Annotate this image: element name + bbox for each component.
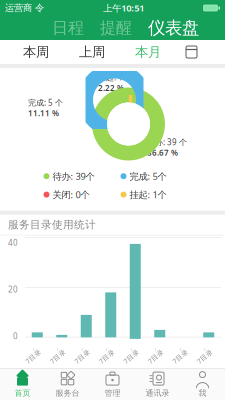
staticText: 管理: [104, 388, 120, 398]
button[interactable]: 仪表盘: [140, 14, 207, 42]
staticText: 首页: [14, 388, 30, 398]
staticText: 7目录: [73, 352, 91, 361]
staticText: 挂起: 1 个: [98, 72, 133, 83]
staticText: 2.22 %: [98, 83, 124, 93]
staticText: 挂起: 1个: [129, 188, 166, 201]
staticText: 提醒: [100, 18, 132, 38]
staticText: 仪表盘: [148, 17, 199, 39]
staticText: 7目录: [98, 352, 116, 361]
staticText: 7目录: [147, 352, 165, 361]
button[interactable]: 提醒: [92, 15, 140, 41]
staticText: 上周: [79, 44, 105, 60]
staticText: 完成: 5 个: [28, 97, 63, 108]
staticText: 86.67 %: [147, 147, 178, 158]
staticText: 0: [13, 331, 18, 341]
staticText: 服务目录使用统计: [8, 218, 96, 231]
staticText: 待办: 39个: [52, 170, 94, 182]
staticText: 本月: [135, 44, 161, 60]
staticText: 通讯录: [145, 388, 169, 398]
staticText: 完成: 5个: [129, 170, 166, 182]
staticText: 运营商: [5, 2, 32, 14]
button[interactable]: 本周: [16, 39, 56, 65]
staticText: 7目录: [122, 352, 140, 361]
staticText: 日程: [52, 18, 84, 38]
staticText: 服务台: [55, 388, 79, 398]
staticText: 关闭: 0个: [52, 188, 89, 201]
staticText: 上午10:51: [103, 2, 144, 14]
button[interactable]: 选择日期: [182, 43, 201, 61]
staticText: 7目录: [196, 352, 214, 361]
button[interactable]: 服务台: [45, 369, 90, 400]
staticText: 7目录: [24, 352, 42, 361]
button[interactable]: 本月: [128, 39, 168, 65]
button[interactable]: 首页: [0, 369, 45, 400]
staticText: 7目录: [49, 352, 67, 361]
button[interactable]: 我: [180, 369, 225, 400]
button[interactable]: 管理: [90, 369, 135, 400]
staticText: 11.11 %: [28, 108, 59, 118]
staticText: 我: [198, 388, 206, 398]
staticText: 待办: 39 个: [147, 137, 187, 147]
staticText: 20: [8, 284, 18, 295]
staticText: 本周: [23, 44, 49, 60]
staticText: 令: [32, 2, 44, 14]
staticText: 40: [8, 237, 18, 248]
button[interactable]: 通讯录: [135, 369, 180, 400]
button[interactable]: 上周: [72, 39, 112, 65]
staticText: 7目录: [171, 352, 189, 361]
button[interactable]: 日程: [44, 15, 92, 41]
